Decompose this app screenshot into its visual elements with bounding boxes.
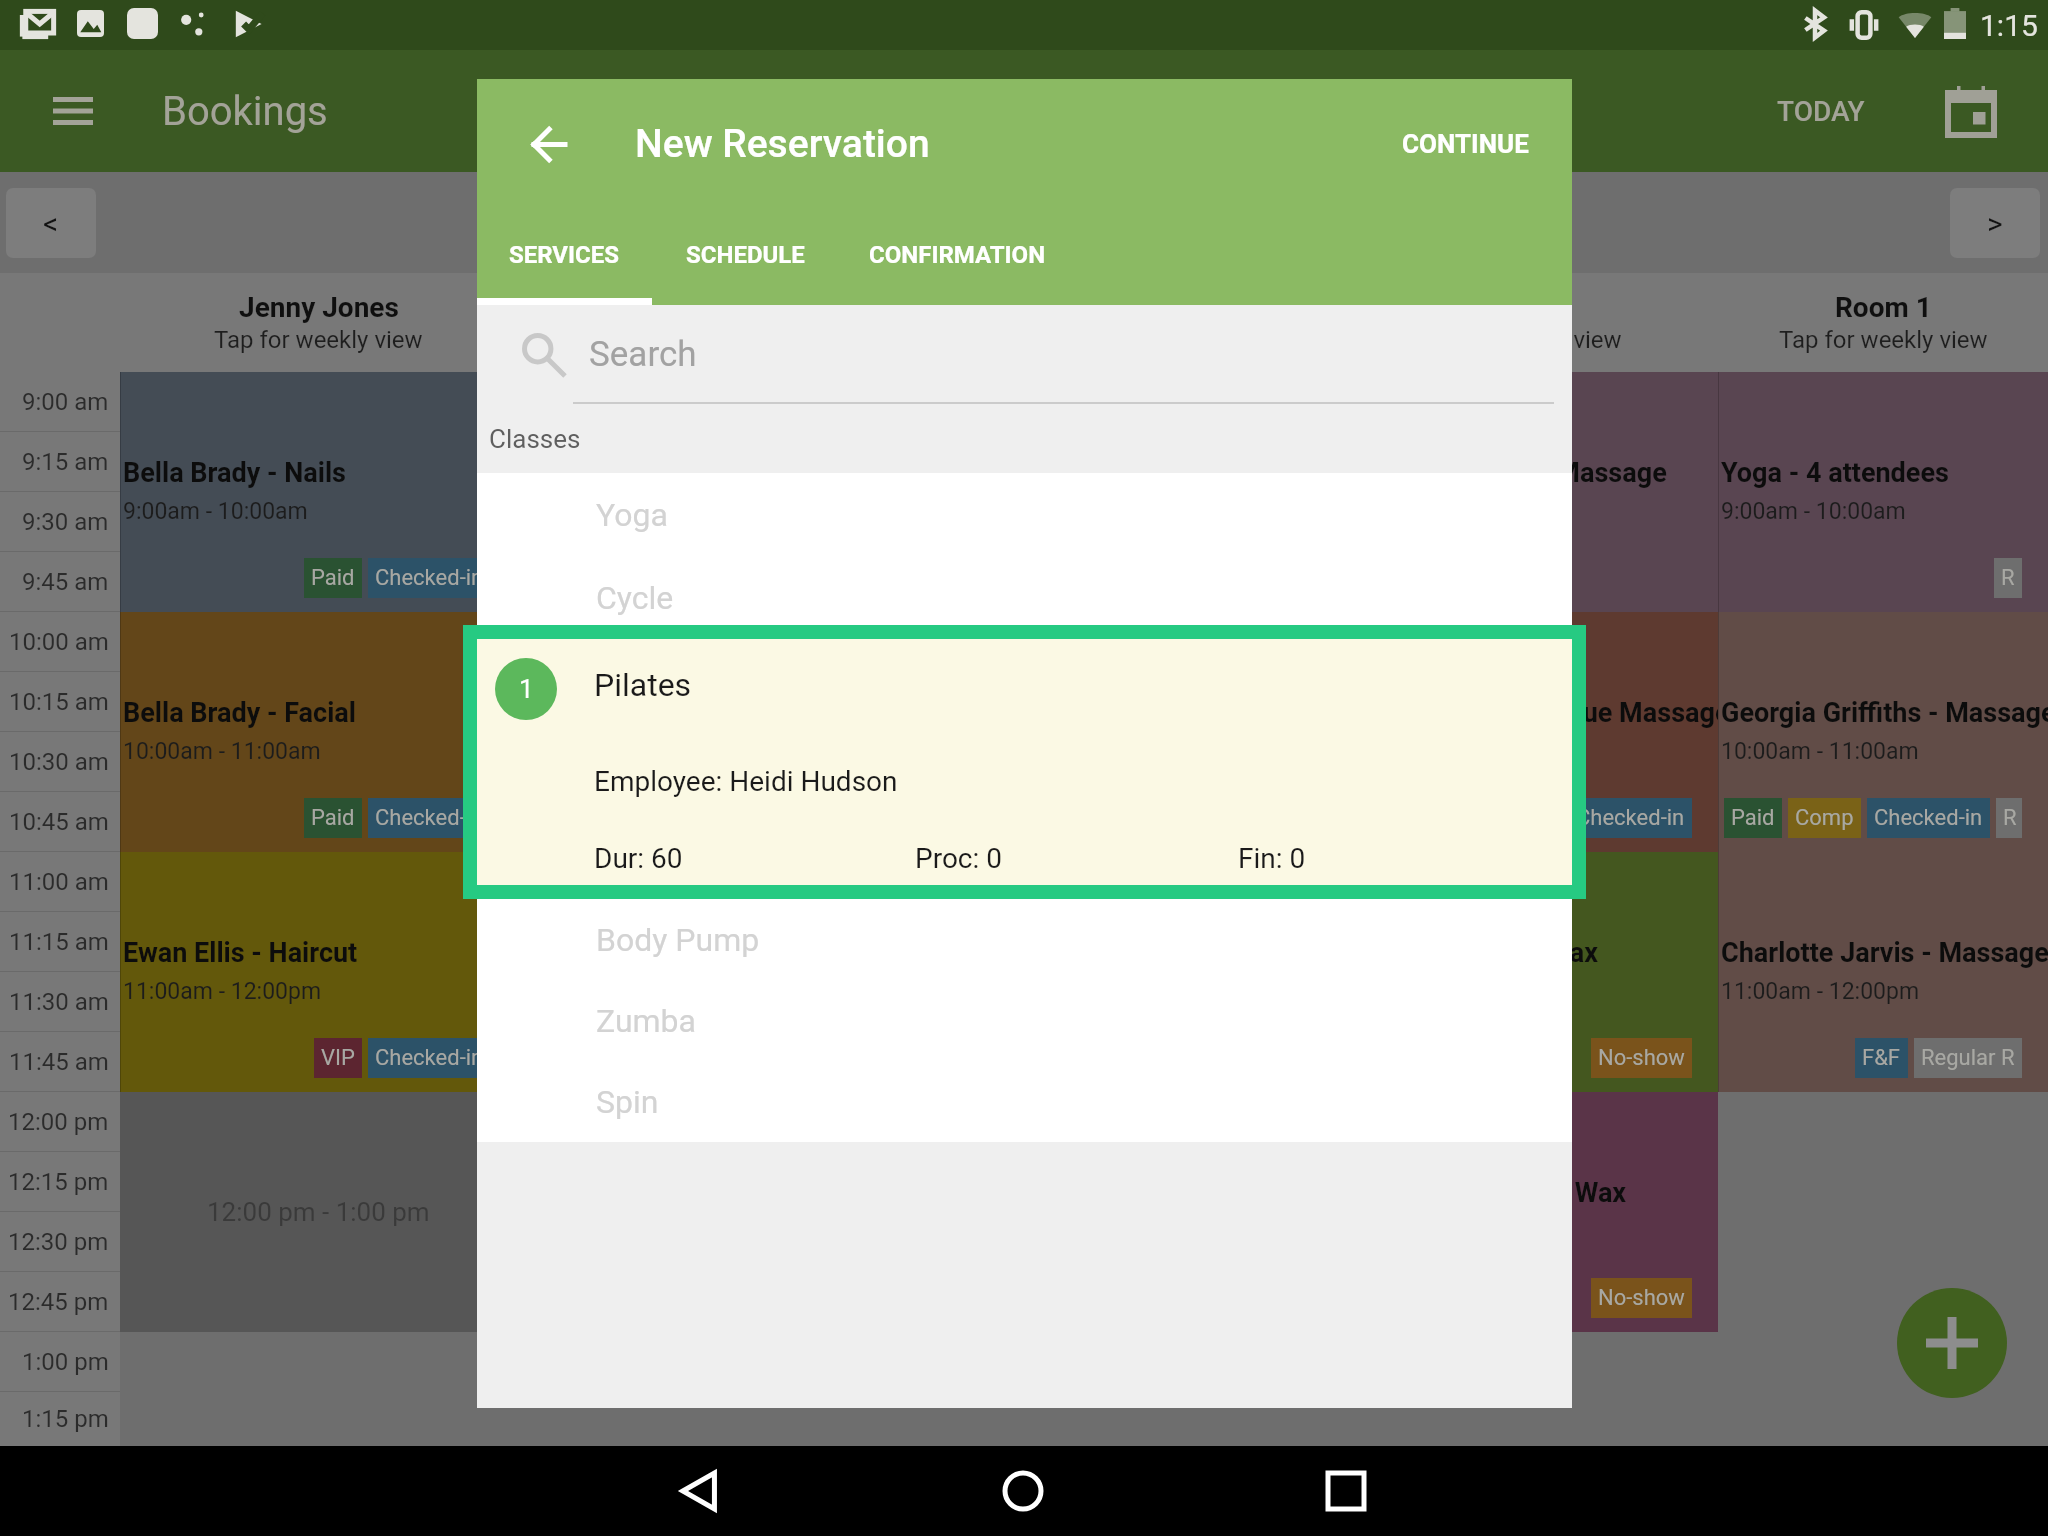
staticText: 1:15 — [1980, 8, 2038, 43]
staticText: 9:00am - 10:00am — [520, 498, 705, 525]
button[interactable]: Cycle — [477, 556, 1572, 639]
staticText: Zumba — [596, 1002, 696, 1040]
staticText: Bella Brady - Facial — [123, 697, 356, 729]
button[interactable]: Ann Jones - Massage — [517, 612, 916, 852]
button[interactable]: Home — [983, 1451, 1063, 1531]
button[interactable]: Kay Kim - Leg Wax — [517, 852, 916, 1092]
staticText: Henry — [1480, 291, 1556, 324]
staticText: F&F — [1862, 1045, 1901, 1071]
staticText: 1:00 pm — [22, 1348, 109, 1376]
staticText: Mia Owen - Deep Tissue Massage — [1319, 697, 1718, 729]
staticText: Checked-in — [375, 805, 484, 831]
button[interactable]: Ben Hall - Full Leg Wax — [1316, 852, 1718, 1092]
button[interactable]: Add booking — [1897, 1288, 2007, 1398]
staticText: 12:15 pm — [8, 1168, 109, 1196]
button[interactable]: Back — [508, 104, 588, 184]
button[interactable]: Bella Brady - Nails — [120, 372, 517, 612]
staticText: Regular R — [1921, 1045, 2015, 1071]
button[interactable]: Ivy Chan - Swedish Massage — [1316, 372, 1718, 612]
staticText: Ivy Chan - Swedish Massage — [1319, 457, 1667, 489]
staticText: Ben Hall - Full Leg Wax — [1319, 937, 1598, 969]
staticText: TODAY — [1777, 95, 1865, 128]
staticText: Jenny Jones — [239, 291, 399, 324]
staticText: 9:30 am — [22, 508, 109, 536]
button[interactable]: Zumba — [477, 980, 1572, 1061]
staticText: Lee Ford - Underarm Wax — [1319, 1177, 1627, 1209]
button[interactable]: Spin — [477, 1061, 1572, 1142]
button[interactable]: Mia Owen - Deep Tissue Massage — [1316, 612, 1718, 852]
staticText: 1 — [519, 674, 534, 704]
staticText: R — [2001, 565, 2015, 591]
staticText: Fin: 0 — [1238, 842, 1306, 875]
button[interactable]: Body Pump — [477, 899, 1572, 980]
button[interactable]: Calendar — [1938, 78, 2004, 144]
staticText: 10:30 am — [9, 748, 109, 776]
button[interactable]: Menu — [42, 80, 104, 142]
button[interactable]: Ewan Ellis - Haircut — [120, 852, 517, 1092]
button[interactable]: Eva Lowe - Massage — [916, 612, 1316, 852]
button[interactable]: TODAY — [1765, 71, 1877, 151]
staticText: 11:15 am — [9, 928, 109, 956]
button[interactable]: Bella Brady - Facial — [120, 612, 517, 852]
button[interactable]: Jan Pond - Leg Wax — [916, 852, 1316, 1092]
staticText: 12:30 pm — [8, 1228, 109, 1256]
button[interactable]: SCHEDULE — [652, 212, 838, 305]
button[interactable]: Back — [660, 1451, 740, 1531]
button[interactable]: Ria Ahmed - Massage — [517, 372, 916, 612]
staticText: 9:00am - 10:00am — [123, 498, 308, 525]
staticText: 11:30 am — [9, 988, 109, 1016]
button[interactable]: Lee Ford - Underarm Wax — [1316, 1092, 1718, 1332]
staticText: New Reservation — [635, 121, 930, 167]
staticText: 10:00 am — [9, 628, 109, 656]
button[interactable]: Sue Dean - Massage — [916, 372, 1316, 612]
staticText: 10:00am - 11:00am — [123, 738, 321, 765]
staticText: 10:45 am — [9, 808, 109, 836]
staticText: Charlotte Jarvis - Massage — [1721, 937, 2048, 969]
staticText: Ewan Ellis - Haircut — [123, 937, 358, 969]
staticText: Ann Jones - Massage — [520, 697, 783, 729]
staticText: SCHEDULE — [686, 241, 805, 269]
staticText: 9:15 am — [22, 448, 109, 476]
staticText: 12:00 pm — [8, 1108, 109, 1136]
button[interactable]: Recents — [1306, 1451, 1386, 1531]
staticText: Georgia Griffiths - Massage — [1721, 697, 2048, 729]
staticText: Body Pump — [596, 921, 760, 959]
staticText: 1:15 pm — [22, 1405, 109, 1433]
staticText: Room 1 — [1835, 291, 1932, 324]
button[interactable]: Yoga — [477, 473, 1572, 556]
staticText: Pilates — [594, 666, 692, 704]
button[interactable]: 12:00 pm - 1:00 pm — [120, 1092, 517, 1332]
button[interactable]: Yoga - 4 attendees — [1718, 372, 2048, 612]
staticText: Search — [589, 334, 697, 375]
staticText: 11:00am - 12:00pm — [123, 978, 322, 1005]
button[interactable]: 1 — [477, 639, 1572, 885]
staticText: 11:00 am — [9, 868, 109, 896]
button[interactable]: > — [1950, 188, 2040, 258]
staticText: 11:00am - 12:00pm — [1721, 978, 1920, 1005]
staticText: VIP — [321, 1045, 355, 1071]
button[interactable]: Georgia Griffiths - Massage — [1718, 612, 2048, 852]
staticText: Tap for weekly view — [214, 326, 423, 354]
button[interactable]: CONFIRMATION — [838, 212, 1077, 305]
staticText: Sue Dean - Massage — [919, 457, 1169, 489]
staticText: CONTINUE — [1402, 129, 1529, 159]
button[interactable]: SERVICES — [477, 212, 652, 305]
staticText: CONFIRMATION — [869, 241, 1046, 269]
button[interactable]: Charlotte Jarvis - Massage — [1718, 852, 2048, 1092]
staticText: Checked-in — [375, 565, 484, 591]
button[interactable]: CONTINUE — [1362, 104, 1569, 184]
button[interactable]: < — [6, 188, 96, 258]
staticText: 10:00am - 11:00am — [1721, 738, 1919, 765]
staticText: Tap for weekly view — [1779, 326, 1988, 354]
